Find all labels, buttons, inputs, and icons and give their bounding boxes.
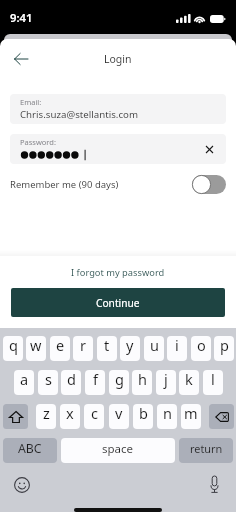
button[interactable]: ABC xyxy=(3,438,57,463)
staticText: k xyxy=(185,370,193,389)
staticText: w xyxy=(30,336,42,355)
button[interactable]: Shift xyxy=(3,404,28,429)
staticText: y xyxy=(126,336,134,355)
staticText: l xyxy=(211,370,215,389)
button[interactable]: h xyxy=(132,370,152,395)
staticText: Login xyxy=(104,52,132,66)
staticText: x xyxy=(66,404,74,423)
button[interactable]: m xyxy=(181,404,201,429)
button[interactable]: Dictation xyxy=(199,472,230,498)
button[interactable]: b xyxy=(133,404,153,429)
button[interactable]: g xyxy=(109,370,129,395)
button[interactable]: Continue xyxy=(11,288,225,317)
staticText: u xyxy=(150,336,159,355)
staticText: t xyxy=(104,336,110,355)
button[interactable]: t xyxy=(97,336,117,361)
button[interactable]: z xyxy=(36,404,56,429)
staticText: Chris.suza@stellantis.com xyxy=(20,108,138,121)
button[interactable]: u xyxy=(144,336,164,361)
staticText: return xyxy=(190,441,223,456)
button[interactable]: e xyxy=(50,336,70,361)
button[interactable]: Email: xyxy=(10,94,226,124)
button[interactable]: n xyxy=(157,404,177,429)
staticText: g xyxy=(115,370,124,389)
staticText: a xyxy=(20,370,29,389)
staticText: i xyxy=(175,336,179,355)
button[interactable]: Clear password xyxy=(202,142,216,156)
staticText: space xyxy=(102,441,134,457)
button[interactable]: w xyxy=(26,336,46,361)
button[interactable]: j xyxy=(156,370,176,395)
button[interactable]: return xyxy=(179,438,233,463)
staticText: c xyxy=(91,404,98,423)
staticText: v xyxy=(115,404,123,423)
button[interactable]: Remember me toggle xyxy=(192,175,226,194)
button[interactable]: f xyxy=(85,370,105,395)
button[interactable]: r xyxy=(73,336,93,361)
staticText: Password: xyxy=(20,137,56,147)
button[interactable]: i xyxy=(167,336,187,361)
button[interactable]: Password: xyxy=(10,134,226,164)
button[interactable]: I forgot my password xyxy=(0,256,236,288)
staticText: 9:41 xyxy=(10,10,33,25)
button[interactable]: s xyxy=(38,370,58,395)
button[interactable]: l xyxy=(203,370,223,395)
staticText: Continue xyxy=(96,296,140,310)
button[interactable]: space xyxy=(61,438,175,463)
staticText: n xyxy=(163,404,172,423)
staticText: q xyxy=(9,336,18,355)
staticText: I forgot my password xyxy=(71,266,165,279)
staticText: r xyxy=(80,336,86,355)
button[interactable]: Backspace xyxy=(209,404,234,429)
button[interactable]: Emoji xyxy=(5,472,38,498)
button[interactable]: v xyxy=(109,404,129,429)
staticText: o xyxy=(197,336,206,355)
staticText: z xyxy=(43,404,50,423)
button[interactable]: p xyxy=(214,336,234,361)
button[interactable]: x xyxy=(60,404,80,429)
staticText: h xyxy=(138,370,147,389)
button[interactable]: a xyxy=(14,370,34,395)
button[interactable]: y xyxy=(120,336,140,361)
button[interactable]: q xyxy=(3,336,23,361)
staticText: Email: xyxy=(20,97,42,107)
staticText: s xyxy=(45,370,52,389)
staticText: ABC xyxy=(18,440,42,457)
button[interactable]: d xyxy=(61,370,81,395)
staticText: b xyxy=(139,404,148,423)
button[interactable]: Remember me (90 days) xyxy=(10,173,226,195)
staticText: d xyxy=(67,370,76,389)
staticText: p xyxy=(220,336,229,355)
staticText: e xyxy=(56,336,65,355)
staticText: j xyxy=(164,370,168,389)
button[interactable]: Back xyxy=(5,48,36,69)
button[interactable]: o xyxy=(191,336,211,361)
staticText: f xyxy=(93,370,98,389)
button[interactable]: k xyxy=(179,370,199,395)
button[interactable]: c xyxy=(84,404,104,429)
staticText: m xyxy=(184,404,198,423)
staticText: Remember me (90 days) xyxy=(10,178,119,191)
